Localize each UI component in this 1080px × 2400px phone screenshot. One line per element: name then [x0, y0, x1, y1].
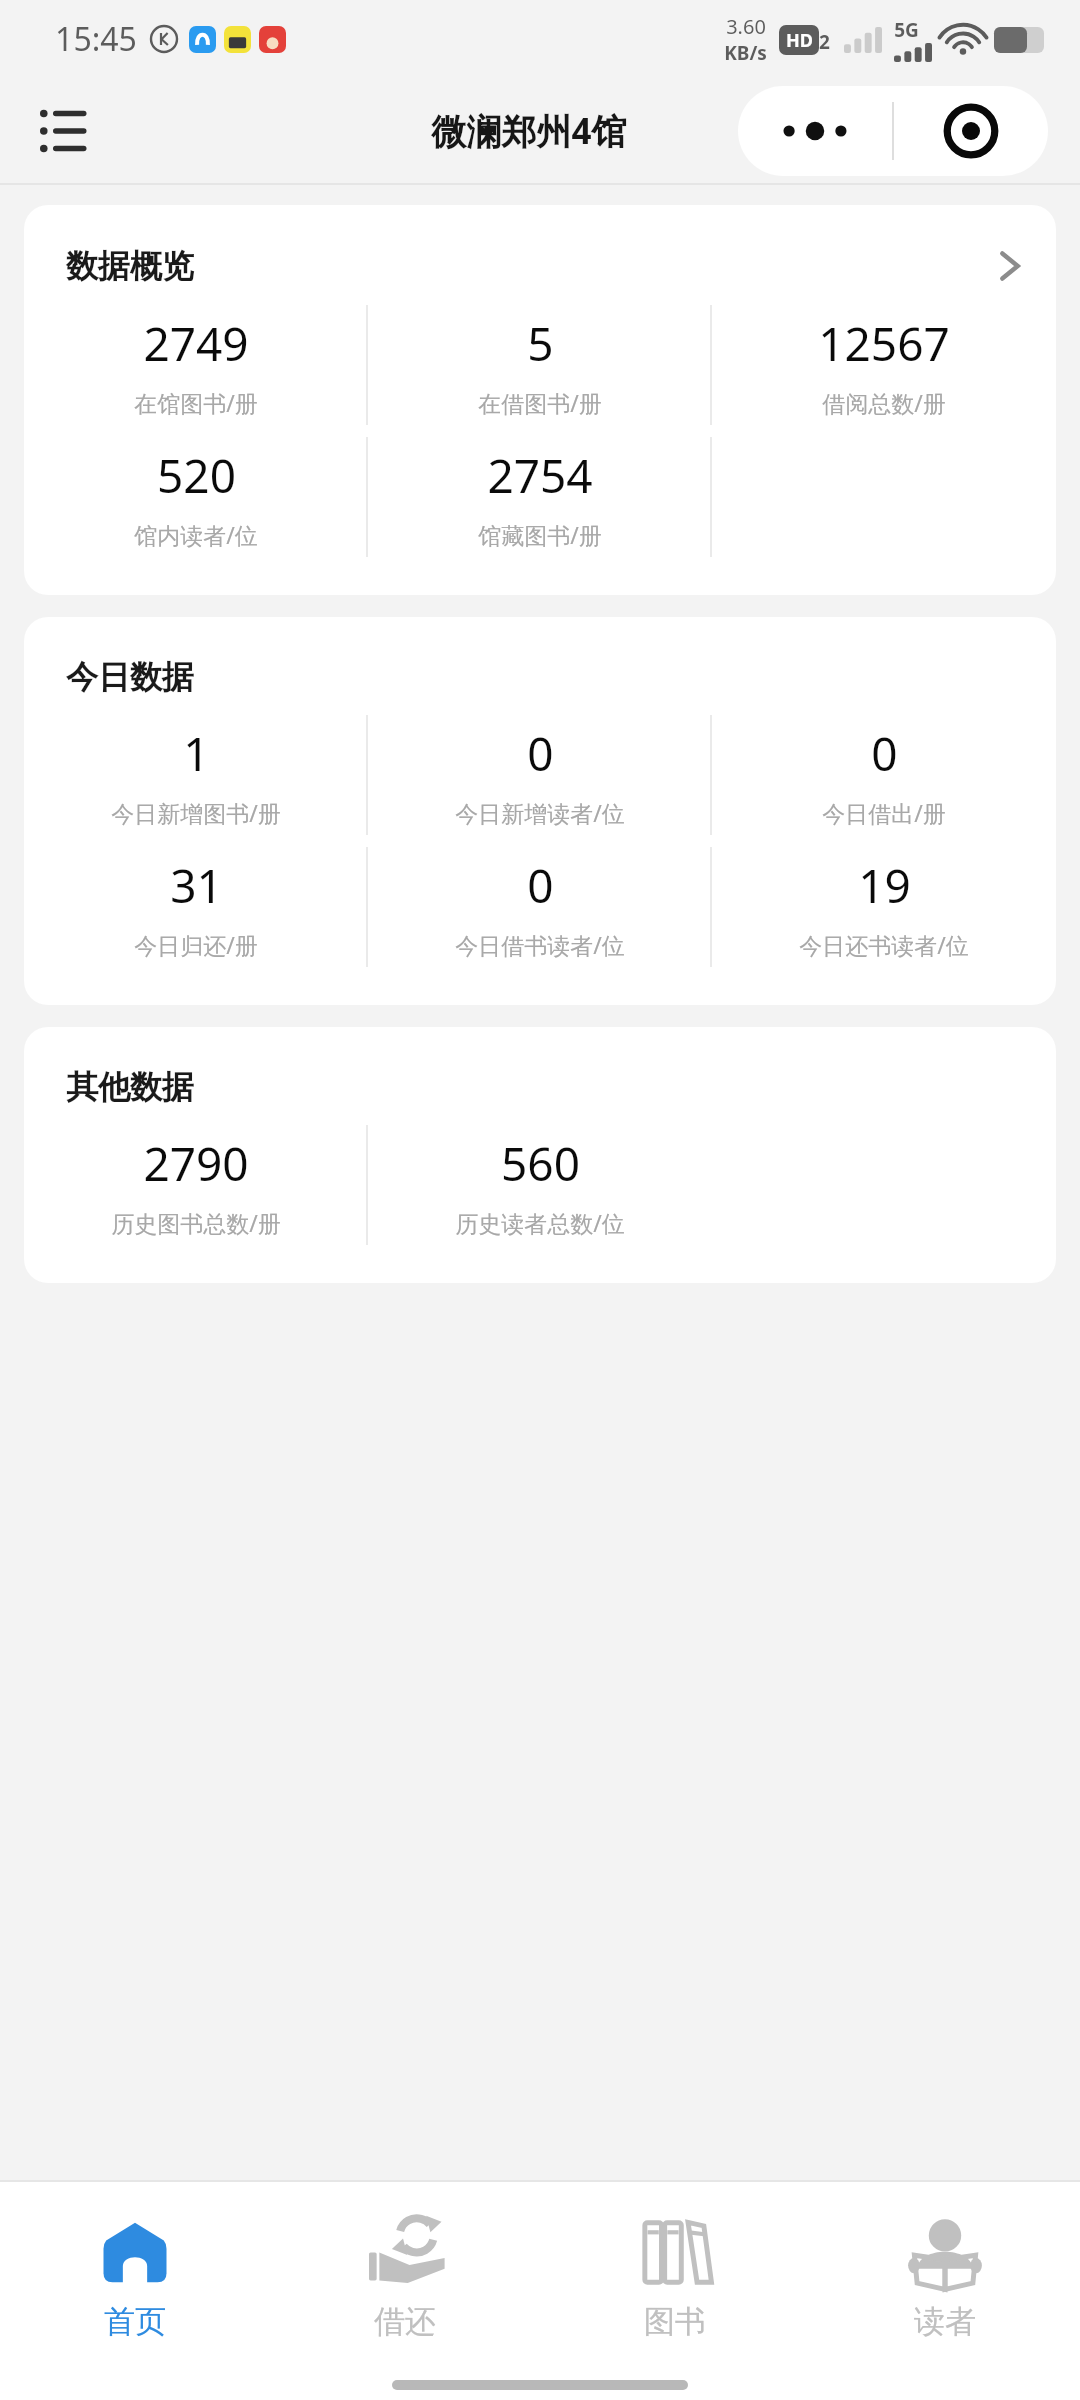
button[interactable]: 其他数据 [24, 1027, 1056, 1283]
staticText: 今日借出/册 [822, 797, 946, 828]
staticText: 1 [183, 722, 210, 785]
staticText: KB/s [724, 40, 767, 66]
staticText: 读者 [914, 2302, 976, 2341]
staticText: 今日归还/册 [134, 929, 258, 960]
staticText: 5 [527, 312, 554, 375]
button[interactable]: 读者 [810, 2182, 1080, 2370]
staticText: 今日还书读者/位 [799, 929, 969, 960]
staticText: 0 [871, 722, 898, 785]
staticText: 520 [157, 444, 236, 507]
staticText: 今日借书读者/位 [455, 929, 625, 960]
button[interactable]: More options [738, 86, 892, 176]
staticText: 560 [501, 1132, 580, 1195]
staticText: 19 [858, 854, 911, 917]
button[interactable]: 数据概览 [24, 205, 1056, 595]
staticText: 借阅总数/册 [822, 387, 946, 418]
staticText: 今日新增读者/位 [455, 797, 625, 828]
button[interactable]: Menu [34, 100, 96, 162]
staticText: 3.60 [726, 13, 766, 40]
staticText: 31 [170, 854, 223, 917]
staticText: 数据概览 [66, 246, 194, 286]
staticText: 馆藏图书/册 [478, 519, 602, 550]
button[interactable]: 图书 [540, 2182, 810, 2370]
staticText: 12567 [818, 312, 950, 375]
staticText: 2749 [143, 312, 249, 375]
staticText: 今日新增图书/册 [111, 797, 281, 828]
staticText: 0 [527, 854, 554, 917]
staticText: 15:45 [55, 17, 137, 61]
staticText: 历史读者总数/位 [455, 1207, 625, 1238]
staticText: 0 [527, 722, 554, 785]
staticText: 借还 [374, 2302, 436, 2341]
staticText: 2 [819, 29, 830, 55]
staticText: 在借图书/册 [478, 387, 602, 418]
staticText: 历史图书总数/册 [111, 1207, 281, 1238]
staticText: 2790 [143, 1132, 249, 1195]
staticText: 图书 [644, 2302, 706, 2341]
staticText: 微澜郑州4馆 [431, 107, 627, 155]
staticText: 首页 [104, 2302, 166, 2341]
staticText: 5G [894, 17, 919, 43]
staticText: 馆内读者/位 [134, 519, 258, 550]
staticText: HD [786, 28, 813, 53]
staticText: 2754 [487, 444, 593, 507]
staticText: 其他数据 [66, 1067, 194, 1107]
staticText: 在馆图书/册 [134, 387, 258, 418]
button[interactable]: 首页 [0, 2182, 270, 2370]
staticText: 今日数据 [66, 657, 194, 697]
button[interactable]: Close mini program [894, 86, 1048, 176]
button[interactable]: 借还 [270, 2182, 540, 2370]
button[interactable]: 今日数据 [24, 617, 1056, 1005]
